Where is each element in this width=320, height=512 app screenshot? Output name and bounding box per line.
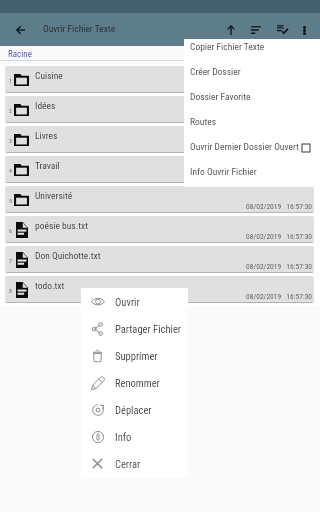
staticText: 7 xyxy=(9,257,12,264)
staticText: Ouvrir Dernier Dossier Ouvert xyxy=(190,141,299,152)
staticText: Cerrar xyxy=(115,458,141,470)
staticText: 08/02/2019 16:57:30 xyxy=(246,202,313,211)
button[interactable]: 4 xyxy=(5,156,314,183)
staticText: 1 xyxy=(9,77,12,84)
staticText: Supprimer xyxy=(115,350,158,362)
button[interactable]: Routes xyxy=(184,114,320,139)
button[interactable]: Dossier Favorite xyxy=(184,89,320,114)
staticText: Routes xyxy=(190,116,216,127)
staticText: todo.txt xyxy=(35,280,65,291)
button[interactable]: Créer Dossier xyxy=(184,64,320,89)
button[interactable]: 7 xyxy=(5,246,314,273)
button[interactable]: 8 xyxy=(5,276,314,303)
staticText: Travail xyxy=(35,160,60,171)
staticText: Université xyxy=(35,190,73,201)
staticText: 5 xyxy=(9,197,12,204)
staticText: 6 xyxy=(9,227,12,234)
staticText: 08/02/2019 16:57:30 xyxy=(246,232,313,241)
button[interactable]: Ouvrir xyxy=(81,288,188,315)
staticText: Ouvrir xyxy=(115,296,140,308)
button[interactable]: Info Ouvrir Fichier xyxy=(184,164,320,187)
button[interactable]: Cerrar xyxy=(81,450,188,477)
button[interactable]: Sort xyxy=(247,21,265,39)
button[interactable]: Back xyxy=(8,18,32,42)
button[interactable]: More options xyxy=(295,21,313,39)
staticText: Copier Fichier Texte xyxy=(190,41,265,52)
staticText: poésie bus.txt xyxy=(35,220,88,231)
staticText: Partager Fichier xyxy=(115,323,182,335)
staticText: Cuisine xyxy=(35,70,63,81)
button[interactable]: Racine xyxy=(8,49,32,60)
button[interactable]: Ouvrir Dernier Dossier Ouvert xyxy=(184,139,320,164)
staticText: Idées xyxy=(35,100,56,111)
button[interactable]: Info xyxy=(81,423,188,450)
button[interactable]: Partager Fichier xyxy=(81,315,188,342)
staticText: 4 xyxy=(9,167,12,174)
button[interactable]: Up one level xyxy=(222,21,240,39)
button[interactable]: 1 xyxy=(5,66,314,93)
button[interactable]: Déplacer xyxy=(81,396,188,423)
staticText: Ouvrir Fichier Texte xyxy=(43,23,116,34)
button[interactable]: 6 xyxy=(5,216,314,243)
staticText: Info Ouvrir Fichier xyxy=(190,166,257,177)
staticText: Créer Dossier xyxy=(190,66,241,77)
staticText: Don Quichotte.txt xyxy=(35,250,101,261)
button[interactable]: 5 xyxy=(5,186,314,213)
staticText: Renommer xyxy=(115,377,160,389)
button[interactable]: Supprimer xyxy=(81,342,188,369)
button[interactable]: 3 xyxy=(5,126,314,153)
button[interactable]: 2 xyxy=(5,96,314,123)
button[interactable]: Renommer xyxy=(81,369,188,396)
staticText: Livres xyxy=(35,130,58,141)
staticText: Déplacer xyxy=(115,404,152,416)
staticText: Dossier Favorite xyxy=(190,91,251,102)
staticText: 08/02/2019 16:57:30 xyxy=(246,292,313,301)
staticText: 3 xyxy=(9,137,12,144)
staticText: Info xyxy=(115,431,132,443)
button[interactable]: Copier Fichier Texte xyxy=(184,39,320,64)
button[interactable]: Select files xyxy=(273,21,291,39)
staticText: 08/02/2019 16:57:30 xyxy=(246,262,313,271)
staticText: 2 xyxy=(9,107,12,114)
staticText: 8 xyxy=(9,287,12,294)
